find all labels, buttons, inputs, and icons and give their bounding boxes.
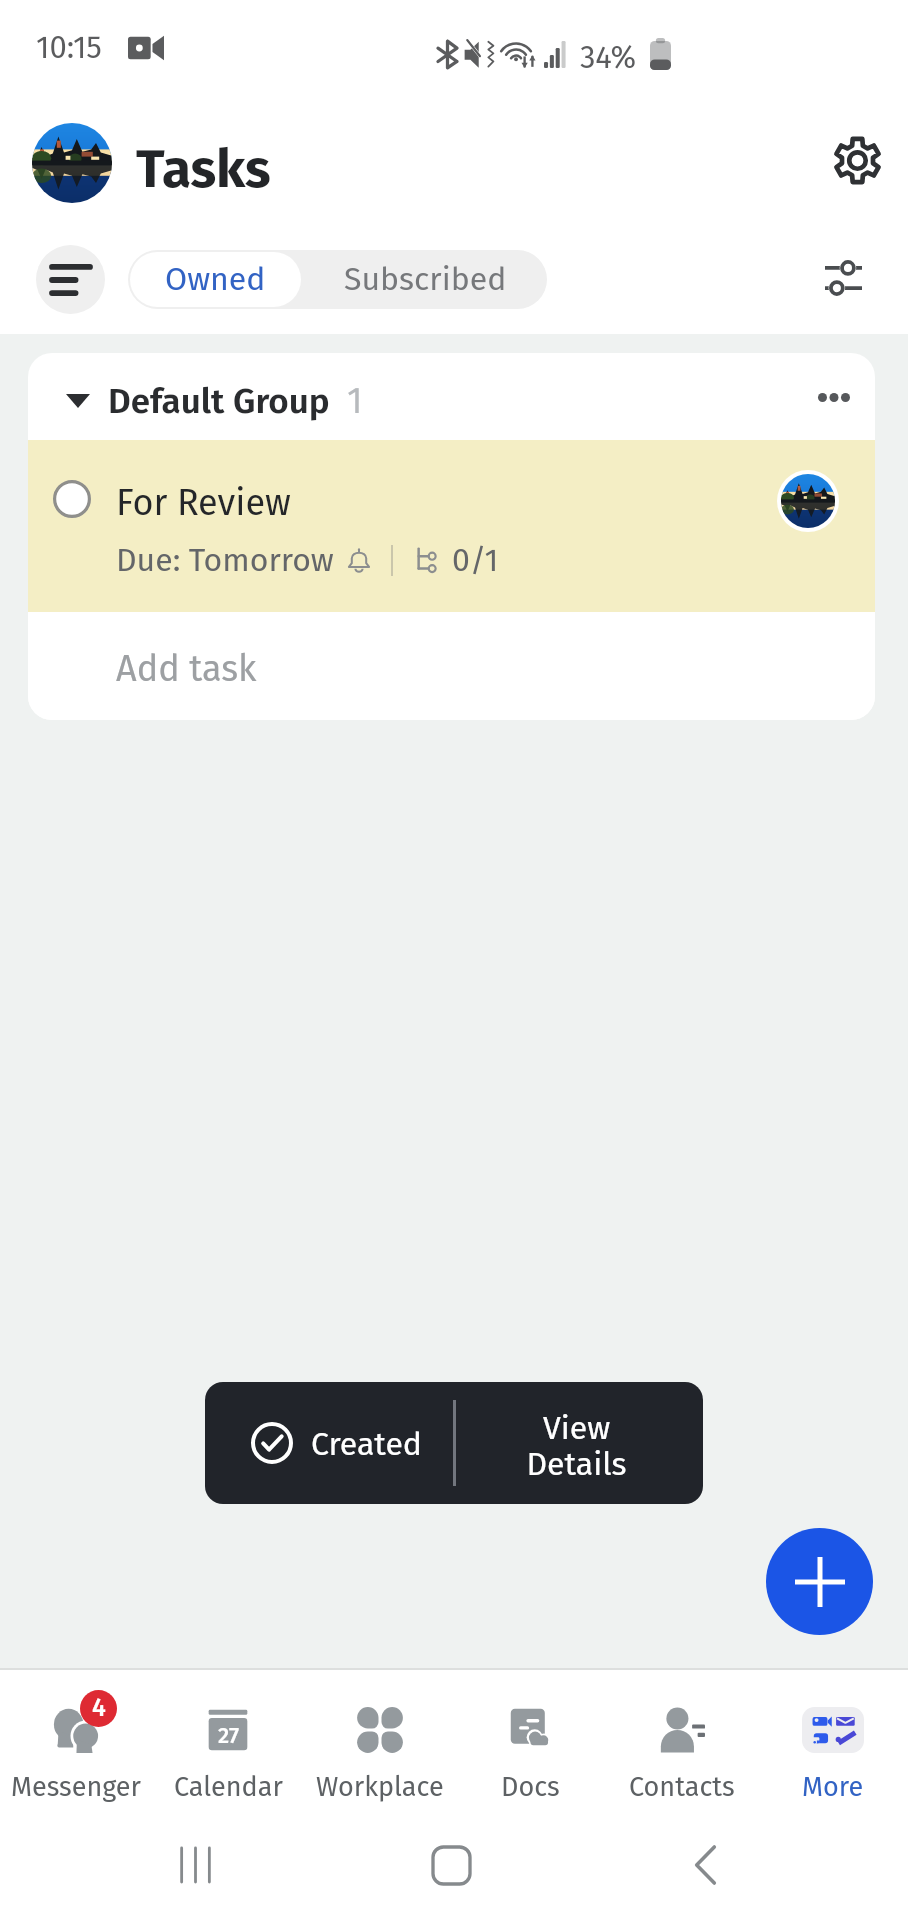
button[interactable]: Settings — [819, 122, 895, 198]
button[interactable]: Filter options — [807, 242, 879, 314]
staticText: 4 — [92, 1693, 106, 1723]
button[interactable]: 27 — [152, 1670, 304, 1810]
staticText: Default Group — [108, 380, 330, 422]
button[interactable]: Workplace — [304, 1670, 455, 1810]
button[interactable]: Subscribed — [303, 250, 547, 309]
staticText: Docs — [501, 1771, 560, 1803]
button[interactable]: Default Group — [28, 353, 875, 440]
staticText: For Review — [116, 481, 291, 524]
button[interactable]: Add task — [28, 612, 875, 720]
staticText: View Details — [526, 1409, 627, 1484]
staticText: Tasks — [136, 137, 271, 201]
button[interactable]: 4 — [0, 1670, 152, 1810]
staticText: 1 — [347, 379, 363, 422]
button[interactable]: Mark complete — [30, 457, 114, 541]
staticText: Messenger — [11, 1771, 141, 1803]
button[interactable]: Docs — [455, 1670, 606, 1810]
staticText: 10:15 — [36, 29, 102, 66]
button[interactable]: Recents — [150, 1820, 240, 1910]
staticText: Contacts — [629, 1771, 735, 1803]
staticText: 34% — [580, 39, 637, 76]
staticText: Created — [311, 1425, 423, 1463]
button[interactable]: Contacts — [606, 1670, 757, 1810]
button[interactable]: More — [757, 1670, 908, 1810]
button[interactable]: Home — [406, 1820, 496, 1910]
staticText: 27 — [218, 1722, 239, 1748]
button[interactable]: Back — [660, 1820, 750, 1910]
staticText: Due: Tomorrow — [116, 541, 334, 579]
button[interactable]: Sort — [36, 245, 105, 314]
staticText: Subscribed — [344, 260, 507, 298]
staticText: More — [802, 1771, 864, 1803]
button[interactable]: View Details — [458, 1382, 703, 1504]
staticText: Add task — [116, 647, 257, 690]
button[interactable]: Mark complete — [28, 440, 875, 612]
button[interactable]: More options — [800, 363, 868, 431]
staticText: Calendar — [174, 1771, 283, 1803]
staticText: Owned — [165, 260, 266, 298]
staticText: Workplace — [316, 1771, 444, 1803]
button[interactable]: Owned — [130, 252, 301, 307]
button[interactable]: Add task — [766, 1528, 873, 1635]
staticText: 0/1 — [452, 541, 499, 579]
